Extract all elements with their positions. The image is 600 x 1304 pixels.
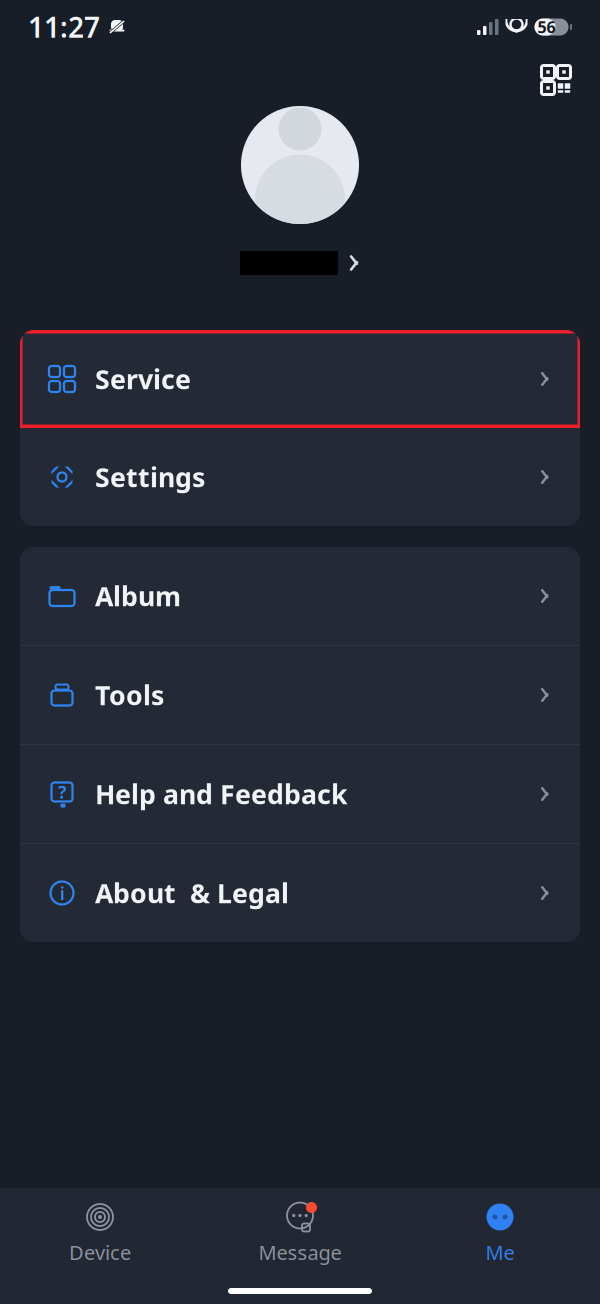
- button[interactable]: Album: [20, 547, 580, 645]
- staticText: Tools: [95, 677, 164, 713]
- staticText: 56: [537, 16, 555, 38]
- staticText: Settings: [95, 459, 205, 495]
- staticText: Message: [258, 1239, 341, 1266]
- button[interactable]: Me: [400, 1188, 600, 1276]
- staticText: Device: [69, 1239, 131, 1266]
- button[interactable]: Scan QR code: [534, 58, 578, 102]
- staticText: i: [59, 881, 64, 905]
- button[interactable]: Device: [0, 1188, 200, 1276]
- staticText: 11:27: [28, 8, 100, 46]
- button[interactable]: Tools: [20, 646, 580, 744]
- staticText: Me: [485, 1239, 514, 1266]
- staticText: Album: [95, 578, 181, 614]
- staticText: ?: [58, 780, 66, 803]
- staticText: Help and Feedback: [95, 776, 348, 812]
- button[interactable]: Settings: [20, 428, 580, 526]
- staticText: About & Legal: [95, 875, 289, 911]
- button[interactable]: i: [20, 844, 580, 942]
- button[interactable]: ?: [20, 745, 580, 843]
- button[interactable]: Service: [20, 330, 580, 428]
- button[interactable]: Message: [200, 1188, 400, 1276]
- staticText: Service: [95, 361, 191, 397]
- button[interactable]: [0, 106, 600, 275]
